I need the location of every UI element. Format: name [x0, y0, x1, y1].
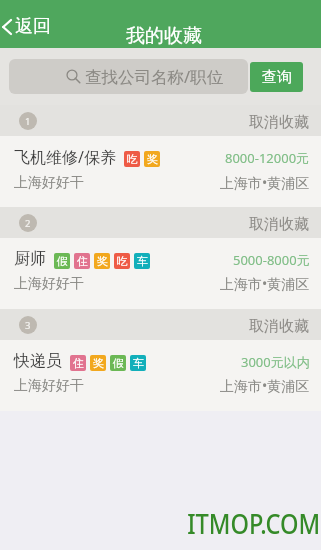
staticText: 上海市•黄浦区	[220, 274, 310, 293]
staticText: 假	[113, 356, 124, 370]
staticText: 查询	[262, 68, 292, 87]
staticText: 吃	[117, 254, 128, 268]
staticText: 2	[25, 217, 31, 230]
staticText: 返回	[15, 15, 51, 38]
button[interactable]: 取消收藏	[249, 213, 309, 232]
button[interactable]: 查找公司名称/职位	[9, 59, 248, 94]
staticText: 3000元以内	[241, 353, 310, 371]
staticText: 假	[57, 254, 68, 268]
button[interactable]: 取消收藏	[249, 111, 309, 130]
staticText: 1	[25, 115, 31, 128]
button[interactable]: 快递员	[0, 340, 321, 411]
staticText: 厨师	[14, 249, 46, 269]
staticText: 飞机维修/保养	[14, 146, 116, 168]
button[interactable]: 飞机维修/保养	[0, 136, 321, 207]
staticText: 我的收藏	[126, 24, 202, 48]
staticText: 住	[77, 254, 88, 268]
staticText: 车	[133, 356, 144, 370]
staticText: 上海市•黄浦区	[220, 376, 310, 395]
staticText: 5000-8000元	[233, 251, 310, 269]
staticText: 快递员	[14, 351, 62, 371]
staticText: 上海市•黄浦区	[220, 173, 310, 192]
staticText: 上海好好干	[14, 174, 84, 192]
staticText: 上海好好干	[14, 377, 84, 395]
staticText: 车	[137, 254, 148, 268]
button[interactable]: 返回	[0, 9, 57, 44]
staticText: 住	[73, 356, 84, 370]
staticText: 吃	[127, 152, 138, 166]
staticText: ITMOP.COM	[187, 505, 321, 542]
button[interactable]: 取消收藏	[249, 315, 309, 334]
staticText: 奖	[97, 254, 108, 268]
staticText: 奖	[147, 152, 158, 166]
staticText: 3	[25, 319, 31, 332]
staticText: 奖	[93, 356, 104, 370]
staticText: 取消收藏	[249, 215, 309, 234]
staticText: 查找公司名称/职位	[85, 65, 224, 88]
button[interactable]: 查询	[250, 62, 303, 92]
staticText: 取消收藏	[249, 317, 309, 336]
staticText: 取消收藏	[249, 113, 309, 132]
staticText: 8000-12000元	[225, 149, 310, 167]
staticText: 上海好好干	[14, 275, 84, 293]
button[interactable]: 厨师	[0, 238, 321, 309]
